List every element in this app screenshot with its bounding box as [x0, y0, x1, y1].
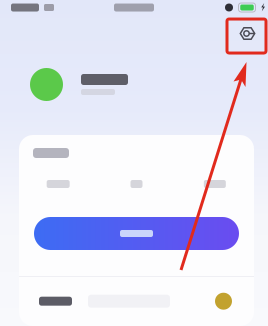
button[interactable]: Settings	[231, 17, 264, 50]
button[interactable]	[34, 217, 239, 250]
